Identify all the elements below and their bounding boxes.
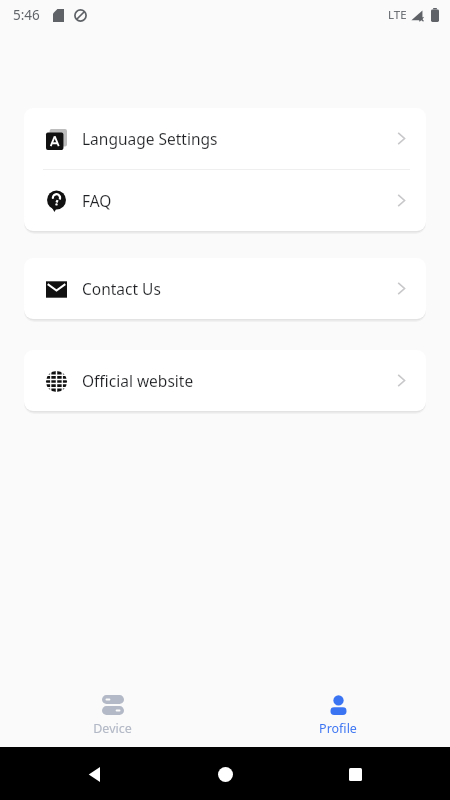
staticText: Language Settings — [82, 128, 218, 149]
button[interactable]: Back — [79, 758, 111, 790]
button[interactable]: Home — [209, 758, 241, 790]
button[interactable]: Official website — [24, 350, 426, 411]
button[interactable]: Device — [0, 687, 225, 743]
button[interactable]: Contact Us — [24, 258, 426, 319]
staticText: FAQ — [82, 190, 112, 211]
button[interactable]: FAQ — [24, 170, 426, 231]
button[interactable]: Language Settings — [24, 108, 426, 169]
staticText: Contact Us — [82, 278, 161, 299]
staticText: Official website — [82, 370, 194, 391]
staticText: Device — [93, 720, 132, 737]
staticText: LTE — [388, 7, 407, 23]
staticText: 5:46 — [13, 6, 40, 24]
staticText: Profile — [319, 720, 357, 737]
button[interactable]: Recent apps — [339, 758, 371, 790]
button[interactable]: Profile — [225, 687, 450, 743]
